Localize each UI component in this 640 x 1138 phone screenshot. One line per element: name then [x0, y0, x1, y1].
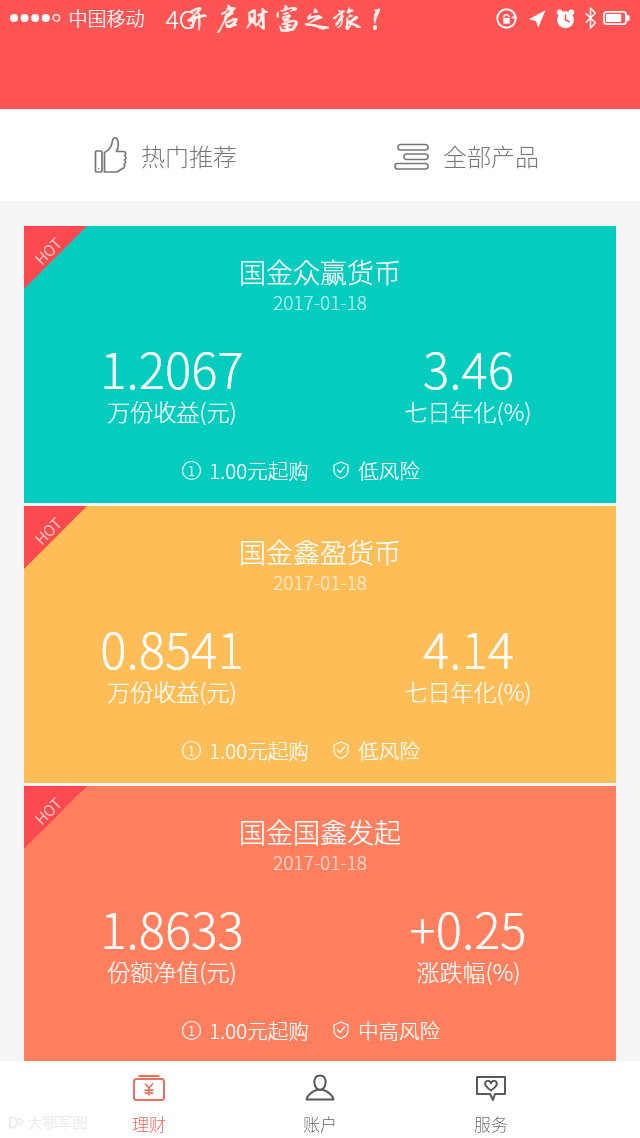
other: Account: [302, 1071, 338, 1107]
staticText: 开启财富之旅！: [183, 4, 393, 35]
staticText: 1: [188, 461, 195, 480]
button[interactable]: Finance: [64, 1061, 234, 1138]
staticText: 热门推荐: [141, 138, 237, 173]
button[interactable]: 热门推荐: [0, 109, 320, 201]
staticText: 1.00元起购: [209, 1015, 309, 1045]
staticText: 2017-01-18: [273, 288, 367, 316]
staticText: 中高风险: [358, 1015, 440, 1045]
staticText: 2017-01-18: [273, 848, 367, 876]
staticText: +0.25: [409, 892, 527, 963]
staticText: 低风险: [358, 735, 420, 765]
button[interactable]: 国金众赢货币: [24, 226, 616, 503]
staticText: 3.46: [423, 332, 514, 403]
button[interactable]: Account: [234, 1061, 405, 1138]
staticText: 1: [188, 1021, 195, 1040]
staticText: 1.2067: [100, 332, 244, 403]
staticText: 七日年化(%): [404, 674, 532, 707]
staticText: 万份收益(元): [107, 394, 237, 427]
staticText: 大鄂军图: [27, 1111, 88, 1133]
staticText: 账户: [303, 1111, 337, 1136]
staticText: 国金众赢货币: [239, 252, 401, 291]
staticText: 1.8633: [100, 892, 244, 963]
staticText: 涨跌幅(%): [416, 954, 521, 987]
button[interactable]: 国金国鑫发起: [24, 786, 616, 1061]
staticText: 4.14: [423, 612, 514, 683]
staticText: HOT: [30, 513, 66, 549]
button[interactable]: 国金鑫盈货币: [24, 506, 616, 783]
staticText: 中国移动: [68, 4, 145, 32]
staticText: 国金鑫盈货币: [239, 532, 401, 571]
staticText: 1.00元起购: [209, 735, 309, 765]
staticText: 2017-01-18: [273, 568, 367, 596]
staticText: 4G: [165, 0, 196, 36]
staticText: HOT: [30, 793, 66, 829]
button[interactable]: 全部产品: [320, 109, 640, 201]
staticText: 1: [188, 741, 195, 760]
staticText: 全部产品: [443, 138, 539, 173]
staticText: 七日年化(%): [404, 394, 532, 427]
other: Finance: [131, 1071, 167, 1107]
staticText: HOT: [30, 233, 66, 269]
staticText: 万份收益(元): [107, 674, 237, 707]
staticText: 服务: [474, 1111, 508, 1136]
other: Service: [473, 1071, 509, 1107]
button[interactable]: Service: [405, 1061, 576, 1138]
staticText: 1.00元起购: [209, 455, 309, 485]
staticText: 国金国鑫发起: [239, 812, 401, 851]
staticText: 0.8541: [100, 612, 244, 683]
staticText: 低风险: [358, 455, 420, 485]
staticText: 份额净值(元): [107, 954, 237, 987]
staticText: 理财: [132, 1111, 166, 1136]
